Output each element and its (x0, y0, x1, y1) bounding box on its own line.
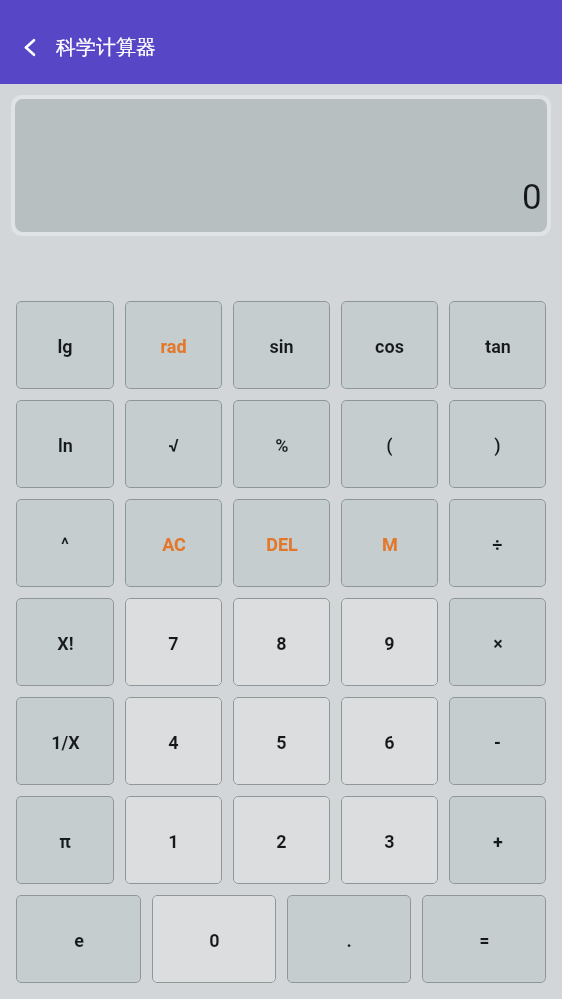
staticText: 科学计算器 (56, 35, 156, 60)
button[interactable]: 2 (233, 796, 330, 884)
staticText: ln (58, 435, 73, 456)
staticText: 0 (522, 177, 542, 218)
staticText: = (479, 930, 490, 951)
staticText: √ (168, 435, 179, 456)
button[interactable]: 5 (233, 697, 330, 785)
button[interactable]: DEL (233, 499, 330, 587)
staticText: % (275, 435, 289, 456)
staticText: M (382, 534, 398, 555)
button[interactable]: X! (16, 598, 114, 686)
staticText: . (346, 930, 352, 951)
staticText: ^ (61, 534, 69, 555)
staticText: 3 (384, 831, 395, 852)
button[interactable]: π (16, 796, 114, 884)
button[interactable]: sin (233, 301, 330, 389)
staticText: tan (485, 336, 511, 357)
staticText: × (493, 633, 503, 654)
button[interactable]: 9 (341, 598, 438, 686)
staticText: ) (494, 435, 501, 456)
staticText: 1/X (51, 732, 80, 753)
staticText: ( (386, 435, 393, 456)
button[interactable]: AC (125, 499, 222, 587)
button[interactable]: 6 (341, 697, 438, 785)
button[interactable]: 4 (125, 697, 222, 785)
button[interactable]: e (16, 895, 141, 983)
staticText: 0 (209, 930, 220, 951)
staticText: rad (160, 336, 187, 357)
button[interactable]: 0 (152, 895, 276, 983)
button[interactable]: 3 (341, 796, 438, 884)
staticText: 4 (168, 732, 179, 753)
button[interactable]: ( (341, 400, 438, 488)
staticText: 8 (276, 633, 287, 654)
button[interactable]: 7 (125, 598, 222, 686)
button[interactable]: ÷ (449, 499, 546, 587)
staticText: X! (57, 633, 74, 654)
staticText: 1 (168, 831, 179, 852)
button[interactable]: . (287, 895, 411, 983)
button[interactable]: ln (16, 400, 114, 488)
button[interactable]: % (233, 400, 330, 488)
button[interactable]: ^ (16, 499, 114, 587)
staticText: - (494, 732, 501, 753)
staticText: e (74, 930, 84, 951)
staticText: + (493, 831, 503, 852)
button[interactable]: 1/X (16, 697, 114, 785)
button[interactable]: √ (125, 400, 222, 488)
staticText: lg (57, 336, 73, 357)
button[interactable]: M (341, 499, 438, 587)
staticText: AC (162, 534, 186, 555)
button[interactable]: lg (16, 301, 114, 389)
staticText: ÷ (492, 534, 503, 555)
staticText: 2 (276, 831, 287, 852)
button[interactable]: + (449, 796, 546, 884)
button[interactable]: tan (449, 301, 546, 389)
button[interactable]: × (449, 598, 546, 686)
button[interactable]: 8 (233, 598, 330, 686)
staticText: cos (375, 336, 404, 357)
button[interactable]: rad (125, 301, 222, 389)
staticText: 7 (168, 633, 179, 654)
staticText: 9 (384, 633, 395, 654)
button[interactable]: Back (12, 31, 48, 67)
button[interactable]: ) (449, 400, 546, 488)
staticText: DEL (266, 534, 298, 555)
button[interactable]: = (422, 895, 546, 983)
button[interactable]: cos (341, 301, 438, 389)
button[interactable]: - (449, 697, 546, 785)
staticText: 5 (276, 732, 287, 753)
staticText: sin (269, 336, 294, 357)
staticText: 6 (384, 732, 395, 753)
staticText: π (59, 831, 71, 852)
button[interactable]: 1 (125, 796, 222, 884)
